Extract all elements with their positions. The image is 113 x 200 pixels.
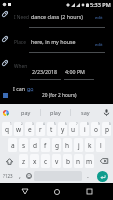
button[interactable]: d: [30, 138, 39, 152]
button[interactable]: Attachment: [1, 10, 9, 18]
staticText: .: [87, 171, 89, 181]
staticText: v: [55, 157, 59, 166]
button[interactable]: edit: [95, 15, 103, 21]
button[interactable]: v: [52, 154, 61, 168]
staticText: 9: [98, 122, 100, 126]
staticText: d: [33, 141, 37, 150]
staticText: k: [88, 141, 92, 150]
staticText: m: [86, 157, 93, 166]
button[interactable]: m: [85, 154, 94, 168]
staticText: 20 (for 2 hours): [42, 92, 77, 99]
button[interactable]: i: [80, 122, 89, 136]
staticText: c: [44, 157, 48, 166]
staticText: b: [66, 157, 70, 166]
staticText: ?123: [3, 173, 13, 179]
staticText: l: [100, 141, 102, 150]
button[interactable]: j: [74, 138, 83, 152]
staticText: t: [50, 125, 53, 134]
staticText: n: [76, 157, 81, 166]
button[interactable]: p: [102, 122, 111, 136]
button[interactable]: I can: [13, 85, 34, 92]
staticText: pay: [21, 109, 31, 116]
button[interactable]: c: [41, 154, 50, 168]
button[interactable]: e: [25, 122, 34, 136]
staticText: r: [39, 125, 42, 134]
button[interactable]: u: [69, 122, 78, 136]
staticText: a: [11, 141, 15, 150]
staticText: 8: [87, 122, 89, 126]
button[interactable]: b: [63, 154, 72, 168]
button[interactable]: o: [91, 122, 100, 136]
button[interactable]: Recent apps: [81, 183, 98, 200]
button[interactable]: play: [41, 104, 70, 121]
staticText: 5: [54, 122, 56, 126]
button[interactable]: Voice input: [100, 104, 113, 121]
staticText: 6: [65, 122, 67, 126]
button[interactable]: r: [36, 122, 45, 136]
staticText: 2: [21, 122, 23, 126]
staticText: 4: [43, 122, 45, 126]
button[interactable]: .: [83, 169, 92, 183]
button[interactable]: n: [74, 154, 83, 168]
button[interactable]: Enter: [92, 169, 112, 183]
staticText: Place: [14, 39, 26, 46]
button[interactable]: Home: [48, 183, 65, 200]
staticText: I can: [13, 85, 27, 92]
button[interactable]: z: [19, 154, 28, 168]
staticText: j: [78, 141, 80, 150]
button[interactable]: s: [19, 138, 28, 152]
staticText: 7: [76, 122, 78, 126]
button[interactable]: x: [30, 154, 39, 168]
staticText: q: [5, 125, 9, 134]
staticText: f: [44, 141, 47, 150]
staticText: e: [28, 125, 32, 134]
button[interactable]: Emoji: [24, 169, 33, 183]
staticText: When: [14, 63, 28, 70]
button[interactable]: Location: [1, 35, 9, 43]
staticText: x: [33, 157, 37, 166]
button[interactable]: l: [96, 138, 105, 152]
button[interactable]: a: [8, 138, 17, 152]
button[interactable]: Backspace: [95, 153, 112, 169]
staticText: 1: [10, 122, 12, 126]
staticText: w: [16, 125, 22, 134]
button[interactable]: h: [63, 138, 72, 152]
button[interactable]: edit: [95, 42, 103, 48]
staticText: i: [84, 125, 86, 134]
staticText: o: [94, 125, 98, 134]
button[interactable]: y: [58, 122, 67, 136]
button[interactable]: g: [52, 138, 61, 152]
staticText: ,: [19, 171, 21, 181]
staticText: play: [50, 109, 61, 116]
button[interactable]: q: [2, 122, 12, 136]
button[interactable]: t: [47, 122, 56, 136]
button[interactable]: ,: [15, 169, 24, 183]
button[interactable]: here, in my house: [31, 38, 76, 45]
staticText: g: [55, 141, 59, 150]
staticText: 5:33 PM: [90, 1, 111, 8]
staticText: say: [81, 109, 90, 116]
staticText: p: [105, 125, 109, 134]
button[interactable]: w: [14, 122, 23, 136]
button[interactable]: dance class (2 hours): [31, 13, 83, 20]
button[interactable]: 4:00 PM: [65, 68, 85, 75]
button[interactable]: Google search: [0, 104, 12, 121]
staticText: h: [65, 141, 70, 150]
staticText: 3: [32, 122, 34, 126]
staticText: s: [22, 141, 26, 150]
staticText: I Need: [14, 14, 29, 21]
button[interactable]: say: [71, 104, 100, 121]
staticText: y: [61, 125, 65, 134]
button[interactable]: Schedule: [1, 59, 9, 67]
button[interactable]: pay: [12, 104, 40, 121]
button[interactable]: k: [85, 138, 94, 152]
staticText: go: [27, 85, 34, 92]
button[interactable]: Back: [16, 183, 33, 200]
button[interactable]: 2/23/2018: [32, 68, 58, 75]
staticText: 0: [109, 122, 111, 126]
button[interactable]: f: [41, 138, 50, 152]
button[interactable]: Shift: [1, 153, 18, 169]
button[interactable]: ?123: [1, 169, 15, 183]
